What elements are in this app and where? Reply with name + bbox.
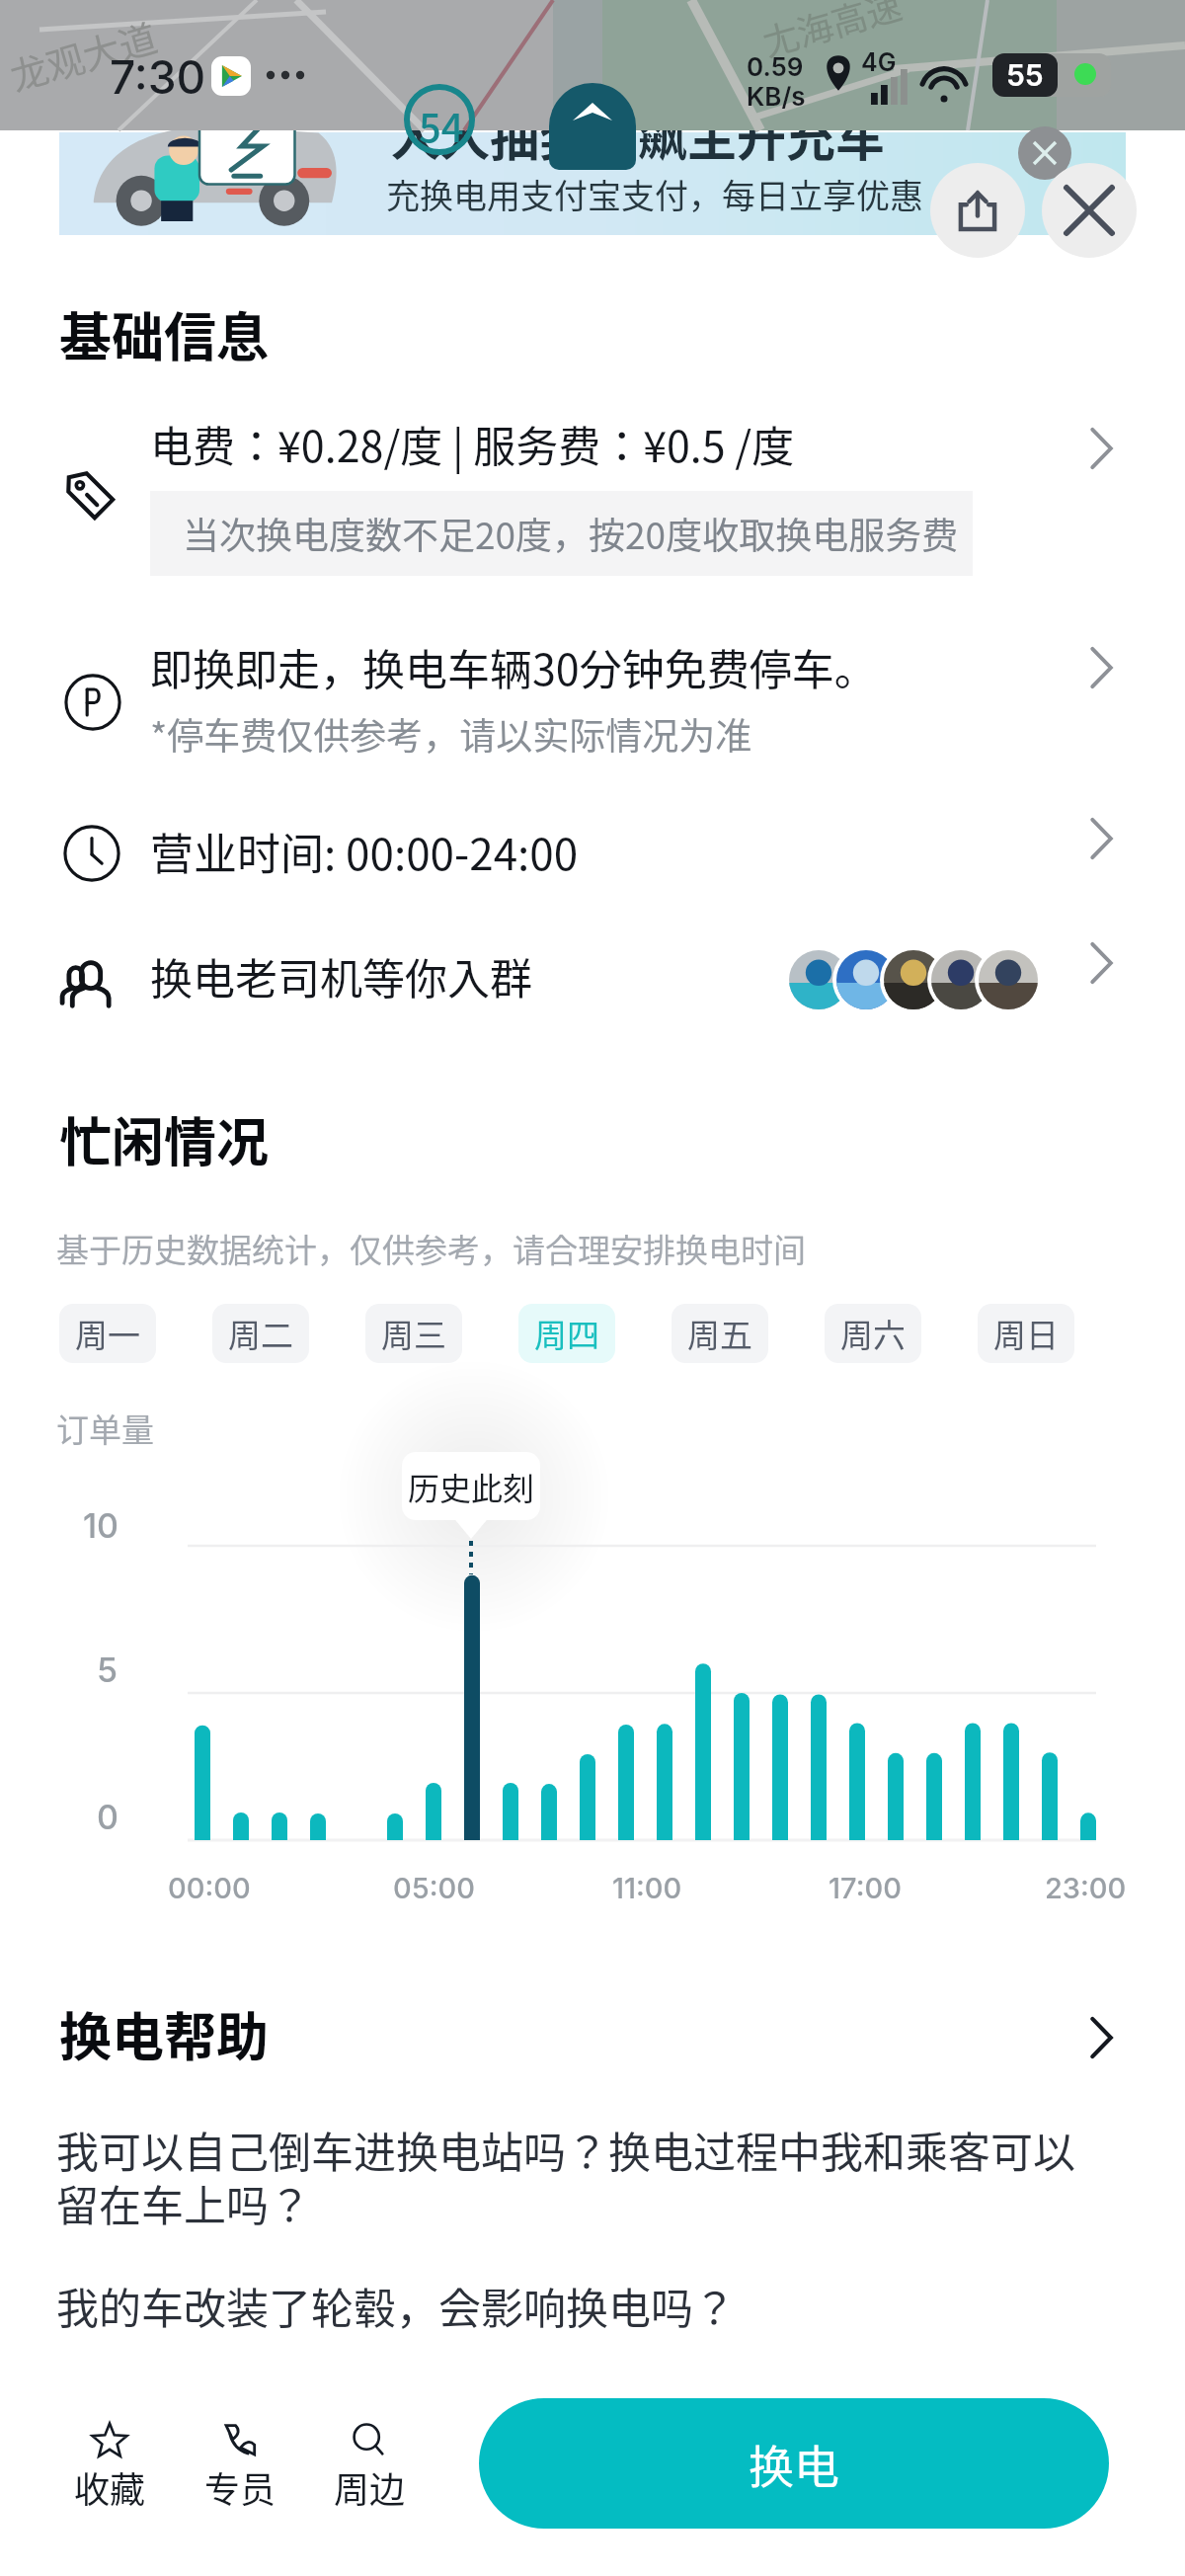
staticText: *停车费仅供参考，请以实际情况为准 (150, 707, 752, 761)
staticText: 充换电用支付宝支付，每日立享优惠 (386, 170, 923, 218)
staticText: 尢海高速 (756, 0, 908, 66)
staticText: 当次换电度数不足20度，按20度收取换电服务费 (183, 507, 959, 560)
staticText: 周边 (334, 2461, 406, 2513)
button[interactable]: 周边 (310, 2420, 429, 2513)
button[interactable]: 周二 (212, 1304, 309, 1363)
staticText: 我的车改装了轮毂，会影响换电吗？ (56, 2275, 736, 2336)
staticText: 周一 (75, 1310, 140, 1357)
button[interactable]: 周日 (978, 1304, 1074, 1363)
staticText: 换电老司机等你入群 (150, 945, 532, 1006)
staticText: 换电 (749, 2431, 839, 2497)
other: Dismiss ad (1018, 126, 1071, 180)
staticText: 54 (419, 97, 464, 154)
button[interactable]: 专员 (181, 2420, 299, 2513)
staticText: 0 (97, 1797, 118, 1837)
button[interactable]: 周四 (518, 1304, 615, 1363)
staticText: 专员 (204, 2461, 276, 2513)
staticText: 17:00 (829, 1871, 902, 1905)
button[interactable]: 营业时间: 00:00-24:00 (0, 820, 1185, 899)
staticText: 基于历史数据统计，仅供参考，请合理安排换电时间 (56, 1225, 806, 1272)
staticText: 周五 (687, 1310, 752, 1357)
button[interactable]: Close (1042, 163, 1137, 258)
button[interactable]: 即换即走，换电车辆30分钟免费停车。 (0, 636, 1185, 784)
staticText: 我可以自己倒车进换电站吗？换电过程中我和乘客可以留在车上吗？ (56, 2119, 1115, 2234)
button[interactable]: Share (930, 163, 1025, 258)
button[interactable]: 换电帮助 (0, 1996, 1185, 2081)
staticText: 即换即走，换电车辆30分钟免费停车。 (150, 636, 877, 697)
staticText: 10 (83, 1505, 119, 1546)
staticText: 周二 (228, 1310, 293, 1357)
staticText: 4G (861, 47, 897, 77)
staticText: 忙闲情况 (59, 1101, 269, 1177)
staticText: 人人抽奖，飙主升充车 (391, 99, 885, 170)
staticText: 05:00 (393, 1871, 475, 1905)
staticText: 周日 (993, 1310, 1059, 1357)
staticText: 5 (97, 1650, 118, 1690)
staticText: 23:00 (1045, 1871, 1127, 1905)
staticText: 基础信息 (59, 296, 269, 372)
button[interactable]: 周三 (365, 1304, 462, 1363)
button[interactable]: 换电老司机等你入群 (0, 945, 1185, 1034)
staticText: 11:00 (612, 1871, 682, 1905)
staticText: 0.59 KB/s (747, 51, 806, 112)
staticText: 电费：¥0.28/度 | 服务费：¥0.5 /度 (150, 413, 795, 474)
button[interactable]: 周一 (59, 1304, 156, 1363)
staticText: 周四 (534, 1310, 599, 1357)
staticText: 收藏 (74, 2461, 146, 2513)
staticText: 历史此刻 (408, 1464, 535, 1509)
staticText: 周三 (381, 1310, 446, 1357)
button[interactable]: 收藏 (50, 2420, 169, 2513)
button[interactable]: 周五 (671, 1304, 768, 1363)
button[interactable]: 换电 (479, 2398, 1109, 2529)
staticText: 7:30 (110, 49, 206, 105)
staticText: 龙观大道 (3, 8, 164, 102)
staticText: 换电帮助 (59, 1996, 269, 2072)
button[interactable]: 周六 (825, 1304, 921, 1363)
staticText: 营业时间: 00:00-24:00 (150, 820, 579, 883)
button[interactable]: 电费：¥0.28/度 | 服务费：¥0.5 /度 (0, 410, 1185, 586)
staticText: 周六 (840, 1310, 906, 1357)
staticText: 00:00 (168, 1871, 251, 1905)
staticText: 55 (1006, 57, 1044, 93)
staticText: 订单量 (56, 1405, 154, 1452)
